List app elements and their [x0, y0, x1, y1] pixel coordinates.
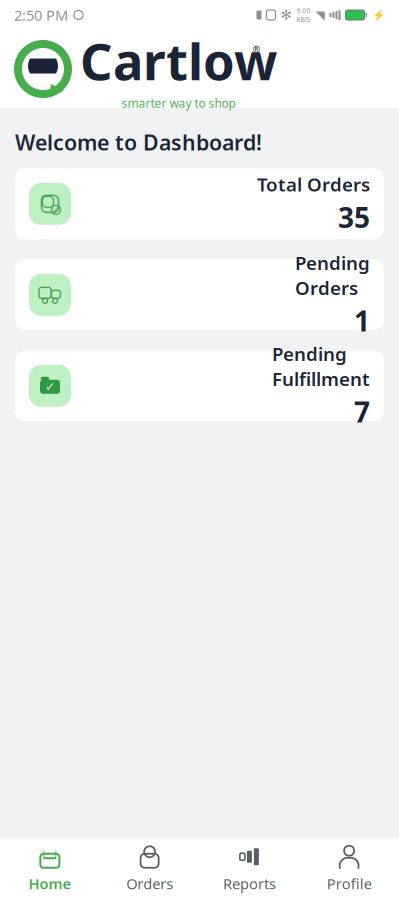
staticText: Total Orders: [257, 172, 370, 197]
staticText: Home: [28, 874, 71, 893]
staticText: Orders: [126, 874, 173, 893]
staticText: 1: [354, 302, 370, 339]
staticText: ✓: [45, 380, 55, 394]
staticText: ✻: [280, 7, 291, 22]
staticText: KB/S: [296, 15, 310, 24]
staticText: ▶: [50, 79, 63, 99]
staticText: ◥: [315, 8, 324, 22]
button[interactable]: Reports: [199, 838, 299, 900]
staticText: ®: [252, 43, 260, 55]
staticText: Pending Fulfillment: [272, 341, 370, 391]
staticText: Cartlow: [80, 27, 277, 94]
button[interactable]: ⌂: [0, 838, 100, 900]
staticText: Reports: [223, 874, 276, 893]
staticText: ⚡: [372, 9, 385, 21]
button[interactable]: Orders: [100, 838, 200, 900]
staticText: Pending Orders: [295, 250, 370, 300]
button[interactable]: Pending Orders: [15, 259, 384, 330]
staticText: 2:50 PM: [14, 5, 68, 25]
button[interactable]: ✓: [15, 168, 384, 239]
staticText: Profile: [327, 874, 372, 893]
staticText: ✓: [52, 205, 59, 214]
staticText: smarter way to shop: [121, 95, 235, 111]
staticText: 9.00: [296, 6, 310, 15]
button[interactable]: Profile: [299, 838, 399, 900]
button[interactable]: ✓: [15, 350, 384, 421]
staticText: 7: [354, 393, 370, 430]
staticText: ⌂: [39, 837, 61, 876]
staticText: 35: [338, 199, 370, 236]
staticText: Welcome to Dashboard!: [15, 128, 262, 156]
